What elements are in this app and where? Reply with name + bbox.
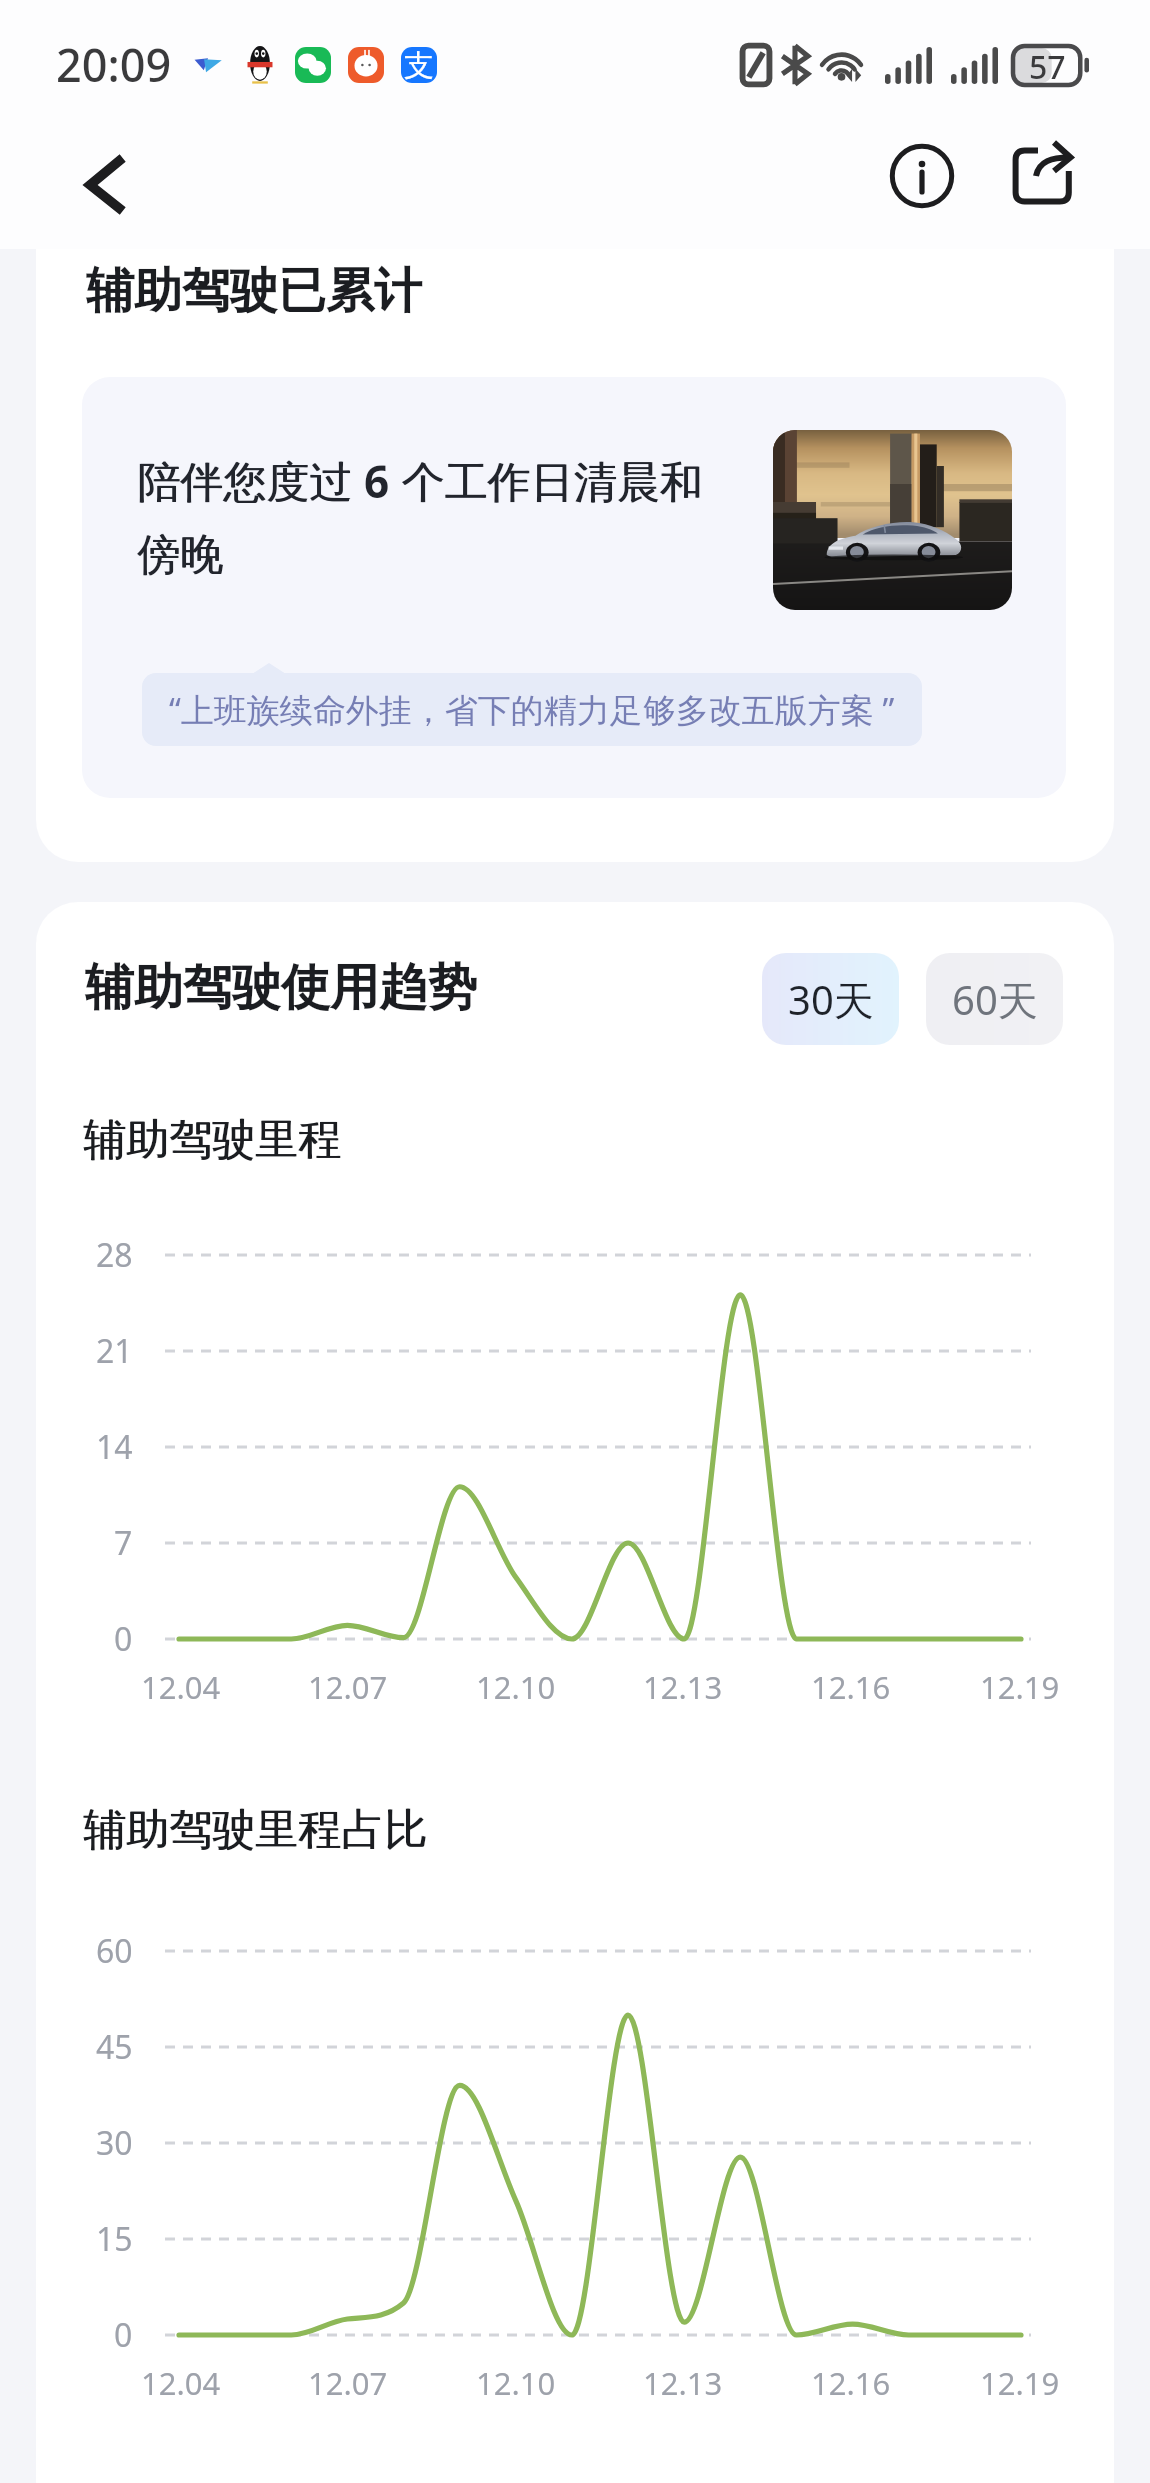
staticText: 辅助驾驶里程 — [84, 1113, 342, 1167]
staticText: 辅助驾驶里程占比 — [83, 1803, 427, 1857]
staticText: 12.07 — [308, 2362, 388, 2404]
staticText: 60 — [96, 1929, 133, 1973]
staticText: 20:09 — [56, 34, 172, 95]
staticText: 30天 — [788, 972, 874, 1027]
staticText: 12.04 — [141, 1666, 221, 1708]
staticText: 12.07 — [308, 1666, 388, 1708]
staticText: 21 — [96, 1329, 133, 1373]
staticText: 辅助驾驶里程占比 — [84, 1803, 428, 1857]
staticText: 傍晚 — [138, 528, 224, 582]
staticText: 0 — [114, 1617, 133, 1661]
staticText: 辅助驾驶已累计 — [86, 261, 422, 321]
staticText: 12.10 — [476, 1666, 556, 1708]
staticText: 57 — [1029, 45, 1066, 84]
staticText: 15 — [96, 2217, 133, 2261]
staticText: 12.13 — [643, 2362, 723, 2404]
staticText: 0 — [114, 2313, 133, 2357]
staticText: 30 — [96, 2121, 133, 2165]
staticText: 个工作日清晨和 — [390, 451, 703, 510]
button[interactable]: Back — [52, 137, 148, 233]
staticText: 12.19 — [980, 2362, 1060, 2404]
staticText: 60天 — [952, 972, 1038, 1027]
staticText: 辅助驾驶使用趋势 — [85, 957, 477, 1019]
staticText: 辅助驾驶里程 — [83, 1113, 341, 1167]
staticText: 傍晚 — [137, 528, 223, 582]
staticText: 45 — [96, 2025, 133, 2069]
staticText: 6 — [364, 451, 390, 511]
staticText: 12.10 — [476, 2362, 556, 2404]
staticText: 28 — [96, 1233, 133, 1277]
staticText: 支 — [404, 47, 434, 83]
staticText: 12.16 — [811, 2362, 891, 2404]
staticText: 14 — [96, 1425, 133, 1469]
button[interactable]: Share — [996, 124, 1100, 228]
button[interactable]: 30天 — [762, 953, 899, 1045]
staticText: 12.13 — [643, 1666, 723, 1708]
staticText: 陪伴您度过 — [137, 451, 364, 510]
staticText: 陪伴您度过 — [138, 451, 365, 510]
staticText: 7 — [114, 1521, 133, 1565]
staticText: 12.16 — [811, 1666, 891, 1708]
staticText: 12.19 — [980, 1666, 1060, 1708]
staticText: 个工作日清晨和 — [391, 451, 704, 510]
staticText: 12.04 — [141, 2362, 221, 2404]
button[interactable]: 60天 — [926, 953, 1063, 1045]
staticText: “上班族续命外挂，省下的精力足够多改五版方案 ” — [169, 687, 895, 732]
button[interactable]: Info — [870, 124, 974, 228]
